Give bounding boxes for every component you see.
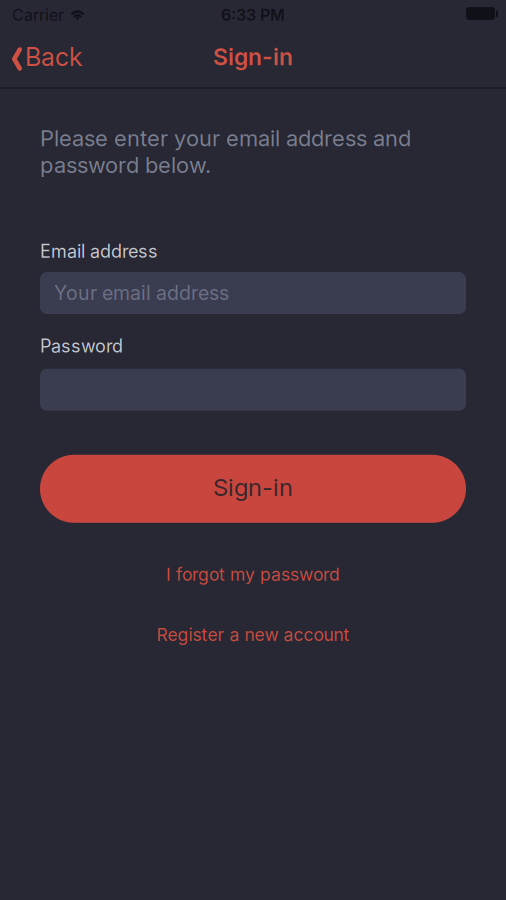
staticText: 6:33 PM [221, 5, 285, 25]
staticText: Back [25, 42, 82, 72]
button[interactable]: I forgot my password [166, 564, 340, 585]
button[interactable]: Register a new account [156, 624, 349, 645]
staticText: I forgot my password [166, 564, 340, 585]
staticText: Your email address [54, 281, 229, 305]
staticText: password below. [40, 152, 211, 178]
staticText: Please enter your email address and [40, 125, 411, 152]
staticText: Password [40, 335, 123, 357]
staticText: Carrier [12, 5, 64, 25]
staticText: Email address [40, 240, 158, 262]
button[interactable]: Sign-in [40, 455, 466, 523]
staticText: Register a new account [156, 624, 349, 645]
button[interactable]: Your email address [40, 272, 466, 314]
button[interactable]: Back [0, 42, 82, 72]
staticText: Sign-in [213, 473, 293, 502]
staticText: Sign-in [213, 43, 293, 71]
